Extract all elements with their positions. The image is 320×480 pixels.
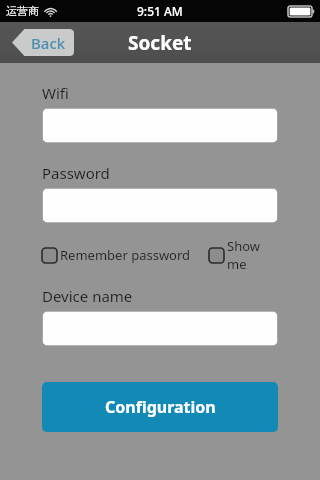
button[interactable] [42,311,278,346]
staticText: Show me [227,237,278,273]
staticText: Wifi [42,83,69,103]
staticText: 运营商 [6,4,39,18]
button[interactable] [42,108,278,143]
staticText: Socket [128,30,192,56]
button[interactable] [42,188,278,223]
staticText: Back [31,33,66,53]
button[interactable]: Show me [209,237,278,273]
staticText: Password [42,163,110,183]
staticText: 9:51 AM [137,3,183,19]
button[interactable]: Configuration [42,382,278,432]
staticText: Configuration [105,396,216,418]
button[interactable]: Remember password [42,246,191,264]
staticText: Device name [42,286,133,306]
staticText: Remember password [60,246,191,264]
button[interactable]: Back [12,29,74,56]
